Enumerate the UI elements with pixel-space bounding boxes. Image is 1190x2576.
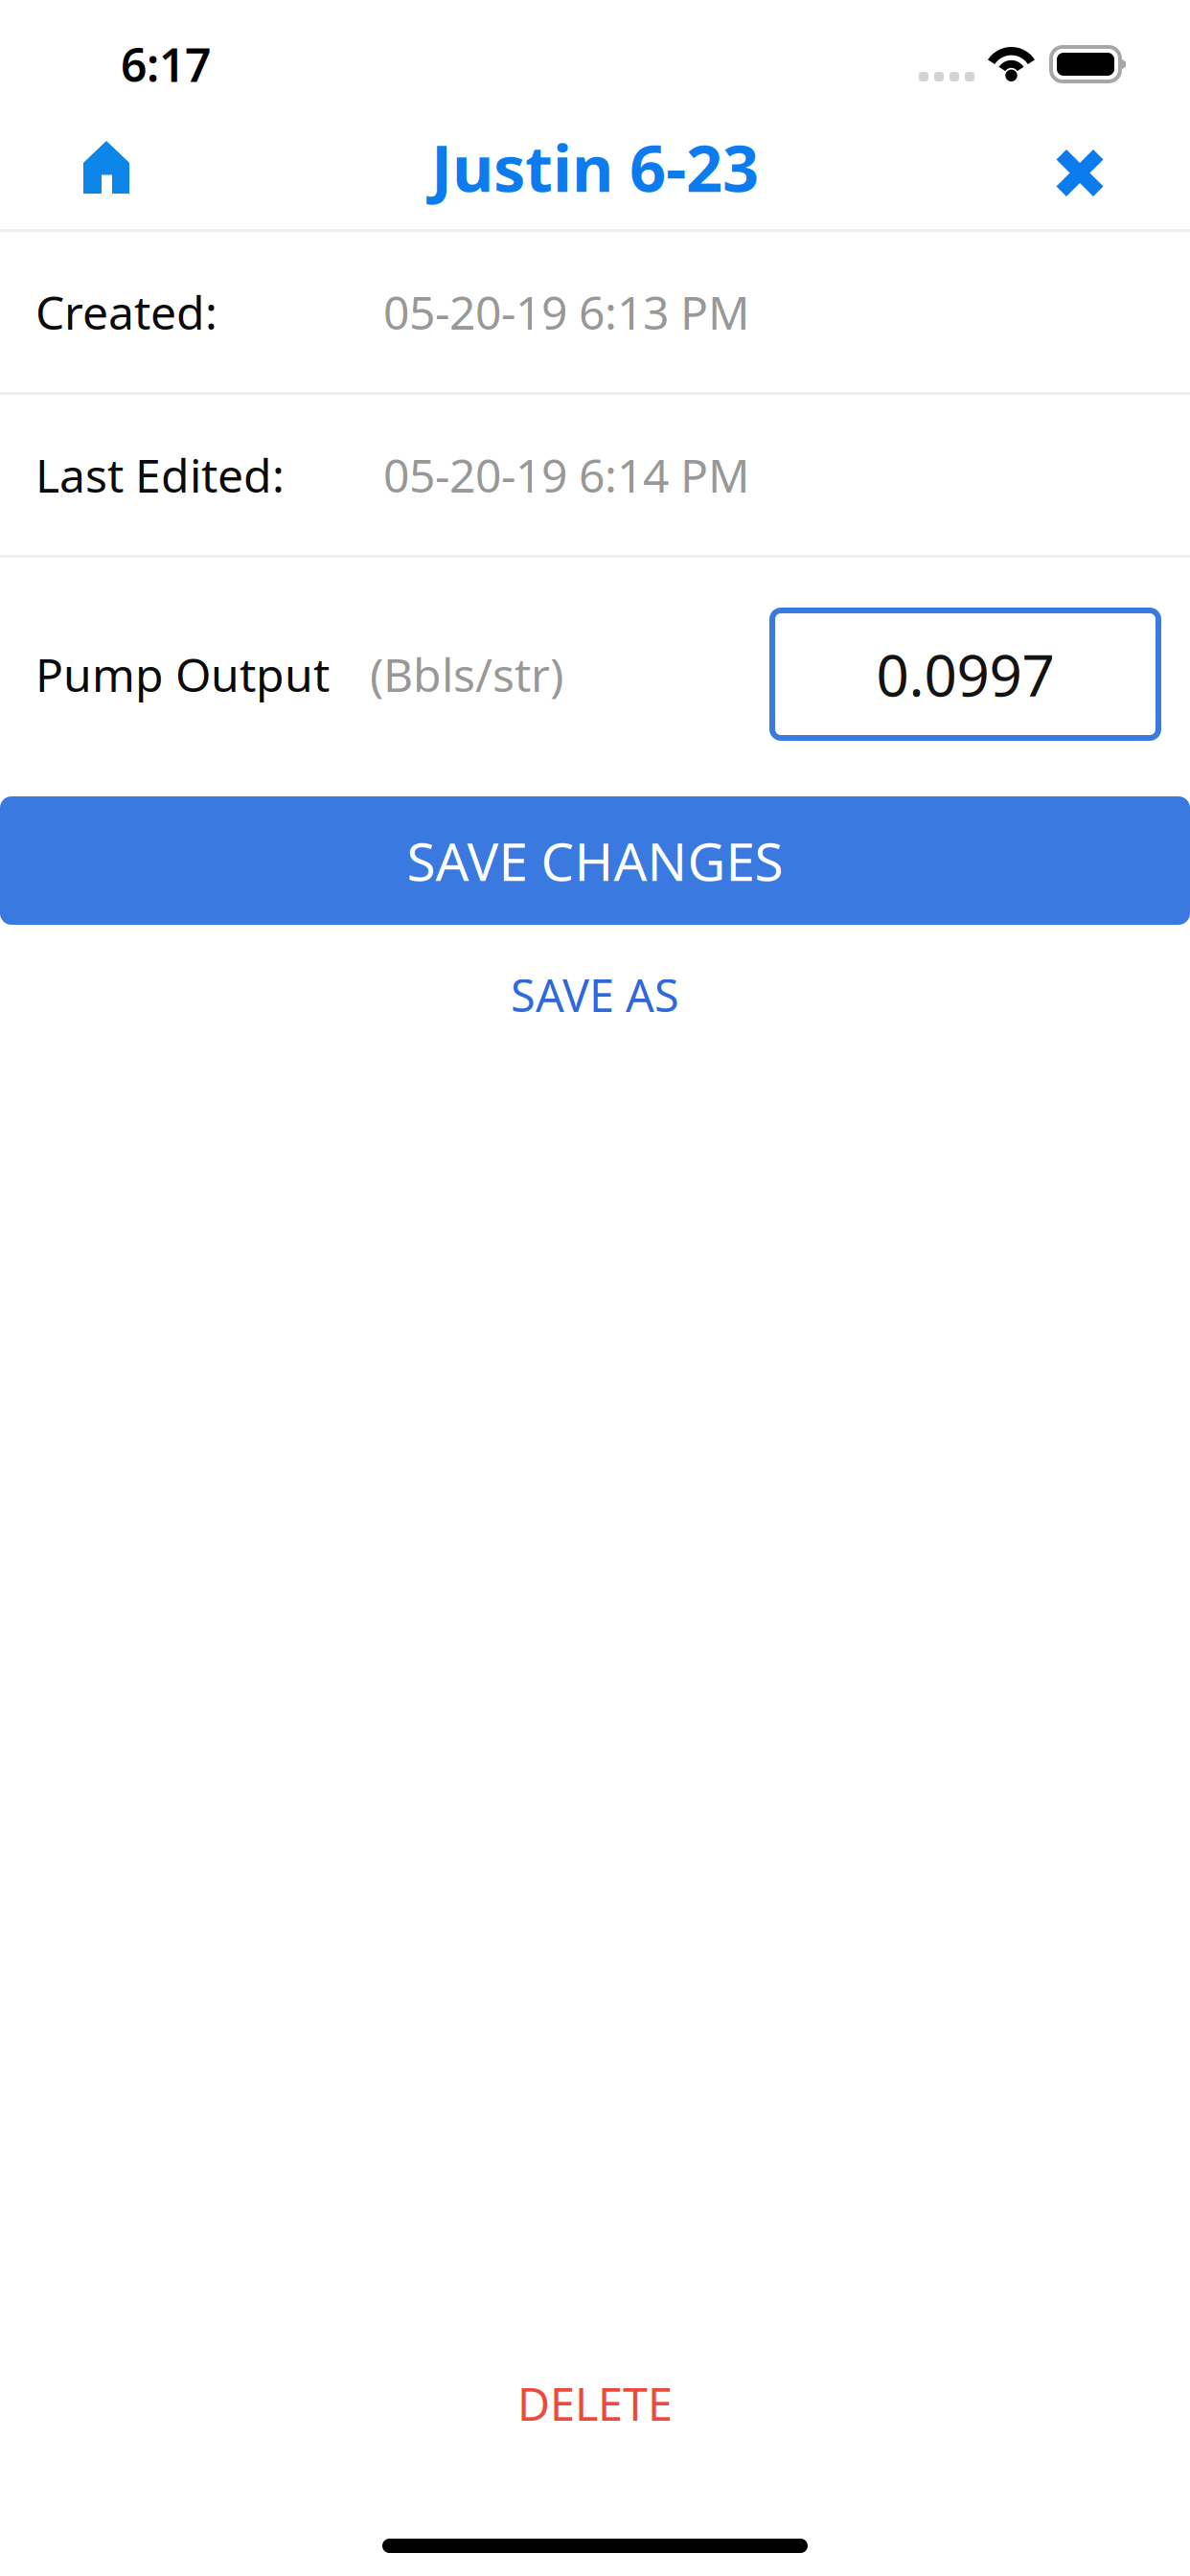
staticText: Created: [35, 281, 217, 342]
staticText: Last Edited: [35, 444, 285, 505]
button[interactable]: Home [47, 107, 166, 228]
staticText: 05-20-19 6:14 PM [383, 444, 750, 505]
staticText: SAVE CHANGES [407, 826, 783, 895]
staticText: SAVE AS [511, 965, 679, 1024]
button[interactable]: SAVE AS [0, 925, 1190, 1065]
staticText: (Bbls/str) [370, 644, 563, 705]
button[interactable]: SAVE CHANGES [0, 796, 1190, 925]
button[interactable]: Close [1020, 101, 1139, 233]
staticText: 6:17 [121, 34, 211, 95]
button[interactable]: DELETE [0, 2357, 1190, 2449]
staticText: Justin 6-23 [431, 125, 759, 210]
staticText: 0.0997 [876, 636, 1054, 712]
staticText: DELETE [517, 2374, 673, 2433]
staticText: 05-20-19 6:13 PM [383, 281, 750, 342]
staticText: Pump Output [35, 644, 330, 705]
